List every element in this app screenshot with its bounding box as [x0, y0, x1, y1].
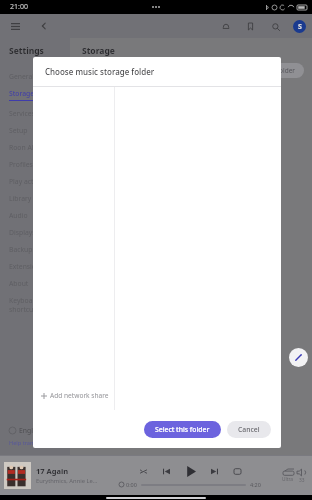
button[interactable]: Extensions — [9, 258, 70, 275]
staticText: Play actions — [9, 177, 47, 186]
button[interactable]: Album art — [4, 462, 31, 489]
staticText: Cancel — [238, 425, 260, 434]
staticText: Roon ARC — [9, 143, 41, 152]
button[interactable]: Shuffle — [137, 465, 149, 477]
staticText: Displays — [9, 228, 36, 237]
staticText: Ultra — [282, 476, 294, 483]
button[interactable]: Bookmarks — [243, 19, 258, 34]
button[interactable]: About — [9, 275, 70, 292]
staticText: 4:20 — [250, 481, 261, 488]
staticText: 17 Again — [36, 466, 69, 476]
staticText: 33 — [299, 477, 305, 484]
staticText: Services — [9, 109, 35, 118]
staticText: Storage — [9, 89, 35, 98]
button[interactable]: Edit — [289, 348, 308, 367]
staticText: Setup — [9, 126, 28, 135]
button[interactable]: Setup — [9, 122, 70, 139]
button[interactable]: Search — [268, 19, 283, 34]
button[interactable]: Select this folder — [144, 421, 221, 438]
staticText: English — [19, 426, 43, 435]
staticText: shortcuts — [9, 305, 40, 314]
button[interactable]: Cancel — [227, 421, 271, 438]
button[interactable]: Audio — [9, 207, 70, 224]
button[interactable]: Library — [9, 190, 70, 207]
staticText: Add folder — [263, 66, 296, 75]
button[interactable]: Back — [36, 18, 52, 34]
button[interactable]: Profiles — [9, 156, 70, 173]
staticText: S — [298, 22, 302, 32]
staticText: Backups — [9, 245, 36, 254]
staticText: Add network share — [50, 391, 109, 400]
staticText: Library — [9, 194, 32, 203]
staticText: Help translate Roon — [9, 439, 62, 447]
staticText: Keyboard — [9, 296, 40, 305]
button[interactable]: Play actions — [9, 173, 70, 190]
staticText: Storage — [82, 45, 115, 57]
button[interactable]: Account — [293, 20, 306, 33]
staticText: 0:00 — [126, 481, 137, 488]
staticText: Choose music storage folder — [45, 66, 155, 77]
button[interactable]: Add folder — [255, 63, 304, 78]
staticText: Profiles — [9, 160, 33, 169]
staticText: Extensions — [9, 262, 44, 271]
button[interactable]: Play — [183, 464, 197, 478]
staticText: Eurythmics, Annie Lennox — [36, 477, 98, 485]
staticText: Select this folder — [155, 425, 210, 434]
staticText: Audio — [9, 211, 28, 220]
button[interactable]: Repeat — [231, 465, 243, 477]
staticText: General — [9, 72, 35, 81]
button[interactable]: Roon ARC — [9, 139, 70, 156]
button[interactable]: Keyboard — [9, 292, 70, 318]
staticText: Settings — [9, 45, 44, 57]
button[interactable]: General — [9, 68, 70, 85]
button[interactable]: English — [9, 426, 43, 435]
button[interactable]: Backups — [9, 241, 70, 258]
button[interactable]: Menu — [7, 18, 23, 34]
button[interactable]: Previous — [160, 465, 172, 477]
button[interactable]: Add network share — [33, 385, 114, 410]
staticText: 21:00 — [10, 2, 28, 12]
button[interactable]: Notifications — [218, 19, 233, 34]
button[interactable]: Services — [9, 105, 70, 122]
button[interactable]: Storage — [9, 85, 70, 105]
button[interactable]: Next — [208, 465, 220, 477]
staticText: About — [9, 279, 29, 288]
button[interactable]: Displays — [9, 224, 70, 241]
button[interactable]: Signal path — [283, 469, 294, 476]
button[interactable]: Volume — [297, 468, 306, 477]
